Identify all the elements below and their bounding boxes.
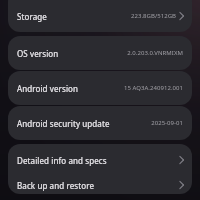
button[interactable]: Android security update <box>8 106 192 140</box>
staticText: 15 AQ3A.240912.001 <box>123 84 183 92</box>
button[interactable]: OS version <box>8 36 192 70</box>
staticText: Storage <box>17 11 47 22</box>
staticText: 223.8GB/512GB <box>130 12 176 20</box>
staticText: Android version <box>17 83 79 94</box>
staticText: Back up and restore <box>17 180 95 191</box>
staticText: 2025-09-01 <box>151 119 183 127</box>
button[interactable]: Detailed info and specs <box>8 144 192 176</box>
staticText: Detailed info and specs <box>17 155 107 166</box>
button[interactable]: Storage <box>8 0 192 32</box>
button[interactable]: Android version <box>8 71 192 105</box>
staticText: Android security update <box>17 118 110 129</box>
staticText: OS version <box>17 48 59 59</box>
button[interactable]: Back up and restore <box>8 176 192 194</box>
staticText: 2.0.203.0.VNRMIXM <box>127 49 183 57</box>
